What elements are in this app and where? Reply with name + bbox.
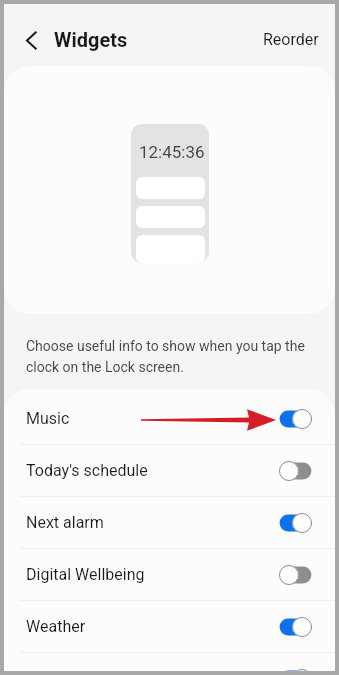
button[interactable]: Sound <box>4 653 335 671</box>
button[interactable]: Turn off <box>279 669 312 671</box>
staticText: Reorder <box>263 30 319 49</box>
button[interactable]: Turn off <box>279 409 312 429</box>
staticText: Music <box>26 409 70 428</box>
staticText: 12:45:36 <box>139 142 205 162</box>
button[interactable]: Weather <box>4 601 335 652</box>
button[interactable]: Turn on <box>279 461 312 481</box>
staticText: Digital Wellbeing <box>26 565 145 584</box>
button[interactable]: Back <box>13 22 49 58</box>
button[interactable]: Digital Wellbeing <box>4 549 335 600</box>
button[interactable]: Reorder <box>247 22 335 57</box>
button[interactable]: Today's schedule <box>4 445 335 496</box>
button[interactable]: Music <box>4 393 335 444</box>
button[interactable]: Turn off <box>279 513 312 533</box>
staticText: Next alarm <box>26 513 104 532</box>
staticText: Choose useful info to show when you tap … <box>26 338 311 375</box>
button[interactable]: Turn on <box>279 565 312 585</box>
staticText: Widgets <box>54 28 128 51</box>
staticText: Weather <box>26 617 86 636</box>
button[interactable]: Turn off <box>279 617 312 637</box>
button[interactable]: Next alarm <box>4 497 335 548</box>
staticText: Today's schedule <box>26 461 148 480</box>
